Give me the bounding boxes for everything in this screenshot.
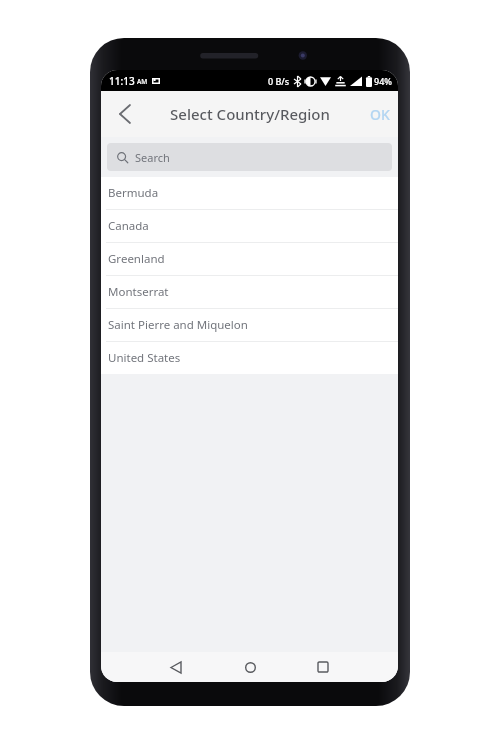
staticText: Canada: [108, 218, 149, 234]
button[interactable]: Back: [105, 94, 145, 134]
staticText: OK: [370, 105, 390, 124]
button[interactable]: Greenland: [101, 243, 398, 275]
staticText: Select Country/Region: [170, 104, 330, 124]
button[interactable]: Back: [163, 654, 189, 680]
button[interactable]: Search: [107, 143, 392, 171]
staticText: 11:13: [109, 74, 135, 88]
staticText: Montserrat: [108, 284, 169, 300]
staticText: Greenland: [108, 251, 165, 267]
staticText: United States: [108, 350, 181, 366]
staticText: Search: [135, 150, 170, 165]
button[interactable]: United States: [101, 342, 398, 374]
staticText: 94%: [374, 75, 392, 87]
staticText: Bermuda: [108, 185, 159, 201]
staticText: 0 B/s: [268, 75, 290, 87]
button[interactable]: Saint Pierre and Miquelon: [101, 309, 398, 341]
button[interactable]: Canada: [101, 210, 398, 242]
button[interactable]: Home: [237, 654, 263, 680]
button[interactable]: Bermuda: [101, 177, 398, 209]
button[interactable]: Montserrat: [101, 276, 398, 308]
staticText: AM: [137, 77, 148, 86]
staticText: Saint Pierre and Miquelon: [108, 317, 248, 333]
button[interactable]: OK: [370, 91, 398, 137]
button[interactable]: Recent apps: [310, 654, 336, 680]
